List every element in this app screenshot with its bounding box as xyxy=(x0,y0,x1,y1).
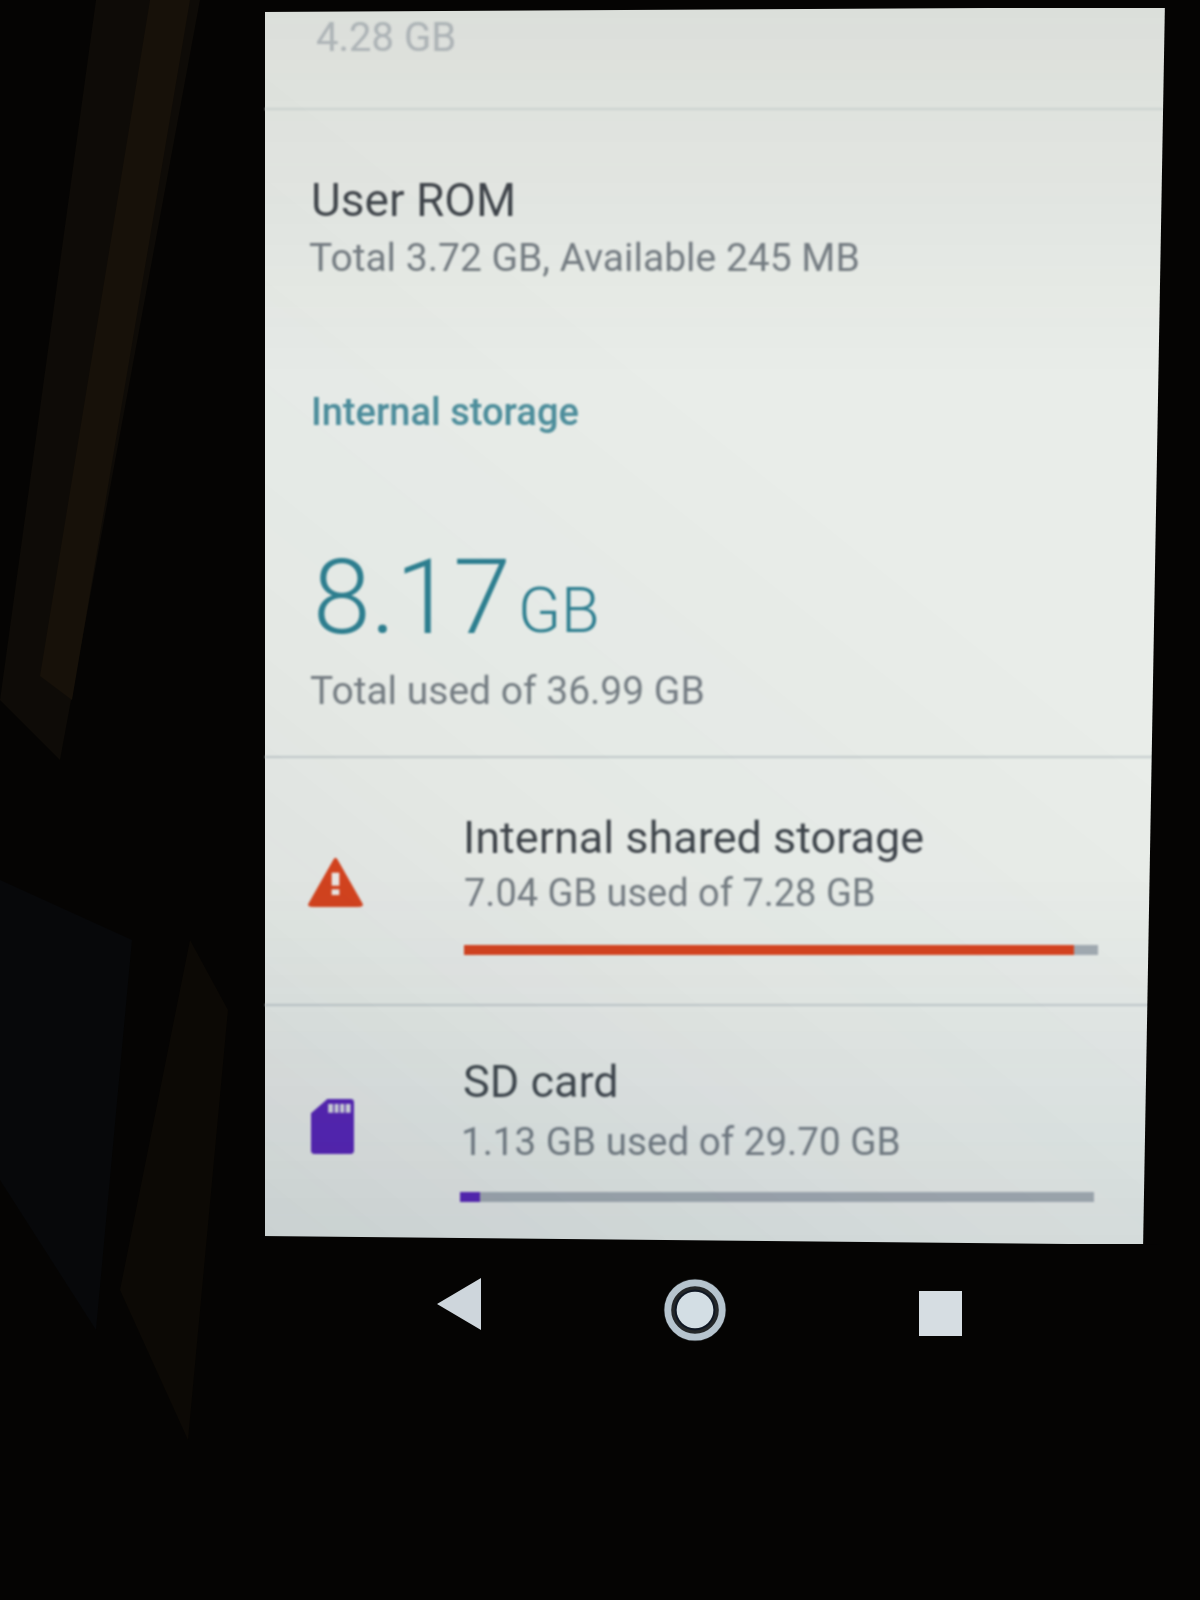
staticText: Internal storage xyxy=(311,390,579,435)
staticText: Internal shared storage xyxy=(463,811,925,864)
button[interactable]: Internal shared storage xyxy=(265,758,1165,1004)
button[interactable]: SD card xyxy=(265,1006,1165,1252)
staticText: 8.17 xyxy=(313,537,511,659)
button[interactable]: Back xyxy=(415,1260,503,1348)
staticText: Total 3.72 GB, Available 245 MB xyxy=(309,235,860,281)
staticText: 1.13 GB used of 29.70 GB xyxy=(461,1119,901,1164)
staticText: GB xyxy=(518,574,600,648)
staticText: 7.04 GB used of 7.28 GB xyxy=(464,871,876,916)
staticText: User ROM xyxy=(311,173,517,227)
staticText: 4.28 GB xyxy=(316,14,457,61)
staticText: Total used of 36.99 GB xyxy=(310,668,705,714)
button[interactable]: Home xyxy=(651,1266,739,1354)
button[interactable]: Recent apps xyxy=(896,1269,984,1357)
staticText: SD card xyxy=(463,1055,619,1108)
